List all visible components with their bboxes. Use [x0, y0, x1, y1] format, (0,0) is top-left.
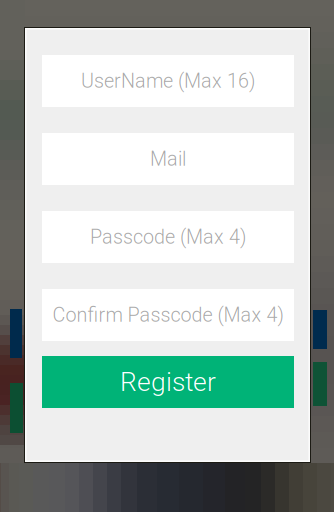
staticText: Mail	[150, 147, 186, 170]
button[interactable]: Confirm Passcode (Max 4)	[42, 289, 294, 341]
button[interactable]: Passcode (Max 4)	[42, 211, 294, 263]
button[interactable]: UserName (Max 16)	[42, 55, 294, 107]
button[interactable]: Register	[42, 356, 294, 408]
staticText: Confirm Passcode (Max 4)	[52, 303, 283, 326]
staticText: Passcode (Max 4)	[90, 225, 246, 248]
button[interactable]: Mail	[42, 133, 294, 185]
staticText: UserName (Max 16)	[81, 69, 255, 92]
staticText: Register	[120, 366, 216, 397]
